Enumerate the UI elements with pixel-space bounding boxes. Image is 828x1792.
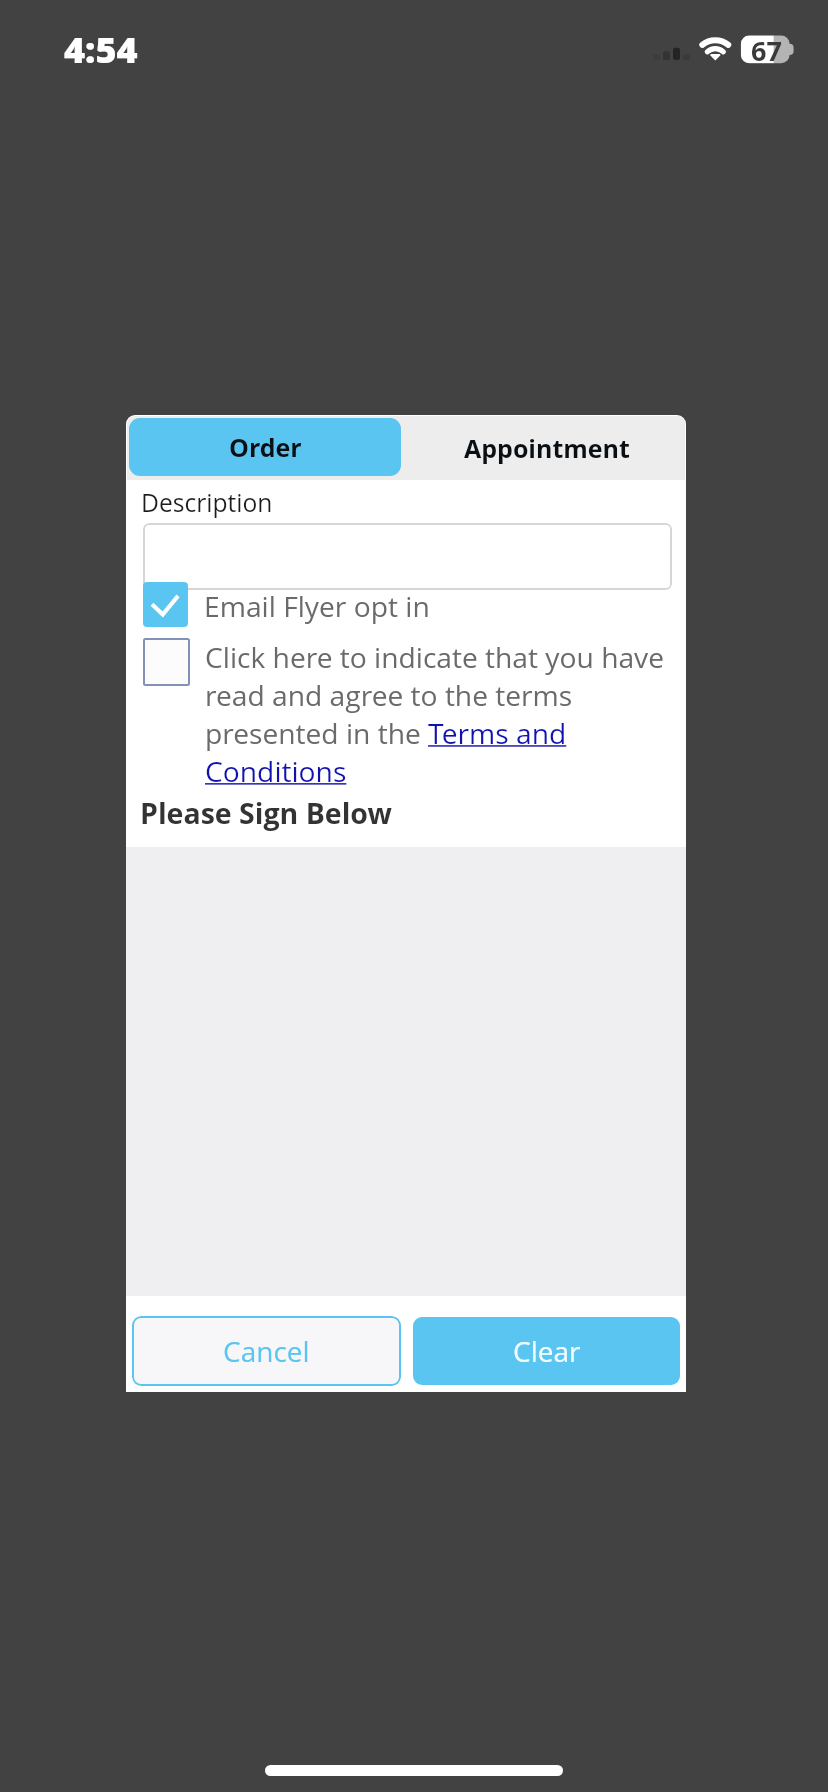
staticText: Order: [229, 430, 302, 464]
button[interactable]: Cancel: [132, 1316, 401, 1386]
button[interactable]: Email Flyer opt in: [143, 582, 188, 627]
staticText: Cancel: [223, 1332, 310, 1370]
button[interactable]: Appointment: [405, 416, 685, 480]
button[interactable]: Click here to indicate that you have rea…: [205, 638, 683, 790]
staticText: Clear: [513, 1332, 581, 1370]
button[interactable]: Agree to terms and conditions: [143, 638, 190, 686]
button[interactable]: Clear: [413, 1317, 680, 1385]
staticText: Description: [141, 486, 273, 520]
staticText: Please Sign Below: [140, 794, 392, 833]
button[interactable]: Order: [129, 418, 401, 476]
button[interactable]: [143, 523, 672, 590]
staticText: Appointment: [464, 431, 630, 465]
staticText: 67: [751, 32, 782, 69]
staticText: Email Flyer opt in: [204, 587, 430, 625]
staticText: 4:54: [64, 25, 138, 74]
